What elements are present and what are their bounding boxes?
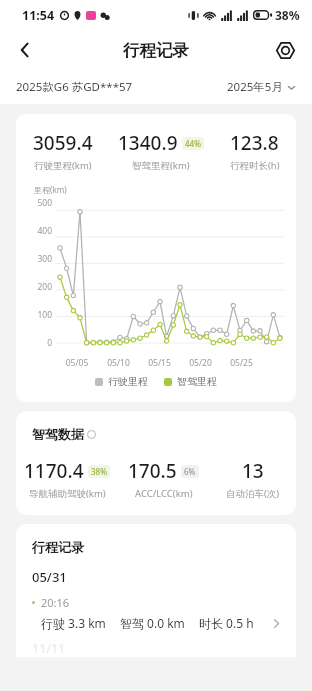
staticText: 智驾 0.0 km — [120, 615, 185, 631]
staticText: 智驾数据 — [32, 426, 84, 442]
staticText: 0 — [47, 337, 52, 349]
staticText: 1170.4 — [24, 458, 84, 484]
staticText: 44% — [185, 138, 201, 149]
staticText: 100 — [37, 309, 52, 321]
staticText: 导航辅助驾驶(km) — [29, 487, 106, 500]
staticText: 行驶里程(km) — [34, 159, 92, 172]
button[interactable]: Back — [6, 31, 44, 69]
staticText: 智驾里程(km) — [132, 159, 190, 172]
staticText: 400 — [37, 225, 52, 237]
staticText: 智驾里程 — [177, 375, 217, 388]
staticText: 05/10 — [102, 357, 135, 369]
staticText: 时长 0.5 h — [199, 615, 254, 631]
staticText: 38% — [91, 466, 107, 477]
staticText: 38% — [275, 7, 300, 23]
button[interactable]: 2025年5月 — [227, 79, 296, 95]
staticText: 11/11 — [32, 640, 66, 657]
staticText: 3059.4 — [33, 130, 93, 156]
staticText: 行程记录 — [32, 539, 84, 555]
staticText: 05/31 — [32, 568, 67, 586]
staticText: 6% — [184, 466, 196, 477]
staticText: 123.8 — [230, 130, 279, 156]
staticText: 500 — [37, 197, 52, 209]
staticText: 20:16 — [41, 595, 70, 610]
staticText: 2025款G6 苏GD***57 — [16, 79, 133, 95]
button[interactable]: 行驶 3.3 km — [32, 613, 282, 640]
staticText: 300 — [37, 253, 52, 265]
staticText: 200 — [37, 281, 52, 293]
staticText: 行驶里程 — [108, 375, 148, 388]
staticText: 1340.9 — [118, 130, 178, 156]
staticText: 05/05 — [60, 357, 94, 369]
staticText: 里程(km) — [34, 184, 67, 195]
button[interactable]: Info — [87, 430, 96, 439]
staticText: 行驶 3.3 km — [41, 615, 106, 631]
staticText: 05/15 — [143, 357, 176, 369]
staticText: 05/20 — [184, 357, 217, 369]
staticText: 行程记录 — [123, 40, 189, 61]
staticText: 2025年5月 — [227, 79, 283, 95]
staticText: ACC/LCC(km) — [135, 487, 193, 500]
staticText: 05/25 — [225, 357, 258, 369]
staticText: 行程时长(h) — [230, 159, 280, 172]
button[interactable]: Settings — [266, 31, 304, 69]
staticText: 170.5 — [128, 458, 177, 484]
staticText: 11:54 — [22, 7, 55, 24]
staticText: 13 — [242, 458, 264, 484]
staticText: 自动泊车(次) — [226, 487, 280, 500]
